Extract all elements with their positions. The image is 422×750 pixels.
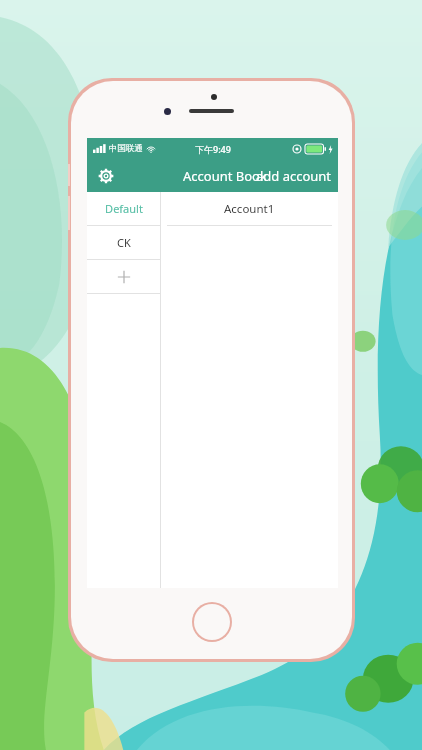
button[interactable]: CK: [87, 226, 160, 259]
staticText: CK: [117, 235, 131, 250]
staticText: 中国联通: [109, 143, 143, 154]
staticText: Default: [105, 201, 143, 216]
button[interactable]: Settings: [92, 162, 120, 190]
staticText: 下午9:49: [195, 143, 231, 155]
button[interactable]: add account: [250, 163, 338, 189]
staticText: add account: [256, 167, 332, 185]
button[interactable]: Account1: [161, 192, 338, 225]
staticText: Account Book: [183, 167, 267, 185]
button[interactable]: Add account book: [87, 260, 160, 293]
button[interactable]: Account Book: [179, 163, 271, 189]
button[interactable]: Default: [87, 192, 160, 225]
button[interactable]: Home: [192, 602, 232, 642]
staticText: Account1: [224, 201, 275, 217]
